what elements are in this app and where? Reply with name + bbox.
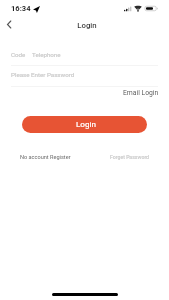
staticText: Telephone — [32, 51, 61, 58]
staticText: 16:34 — [11, 4, 31, 13]
staticText: Login — [76, 119, 96, 128]
staticText: Please Enter Password — [11, 71, 75, 78]
staticText: Forget Password — [110, 154, 150, 160]
button[interactable]: Code — [11, 51, 26, 58]
button[interactable]: Back — [1, 17, 17, 31]
button[interactable]: Email Login — [122, 87, 160, 99]
button[interactable]: No account Register — [20, 154, 71, 161]
staticText: Code — [11, 51, 26, 58]
staticText: No account Register — [20, 154, 71, 161]
button[interactable]: Please Enter Password — [11, 70, 75, 79]
button[interactable]: Login — [22, 116, 147, 133]
button[interactable]: Forget Password — [110, 154, 150, 160]
staticText: Login — [77, 21, 97, 30]
staticText: Email Login — [123, 89, 159, 97]
button[interactable]: Telephone — [32, 51, 61, 58]
